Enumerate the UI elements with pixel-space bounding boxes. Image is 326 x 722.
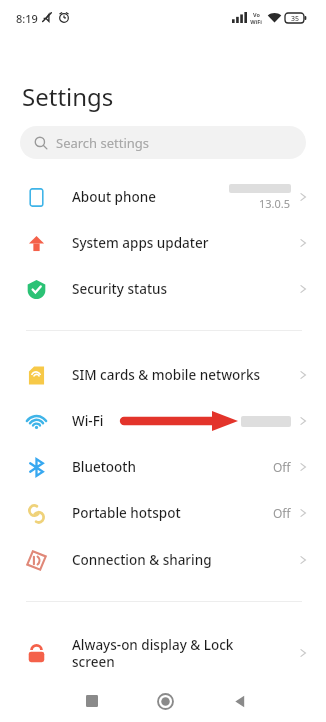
staticText: 35	[291, 14, 300, 24]
button[interactable]: Search settings	[20, 126, 306, 159]
staticText: Security status	[72, 280, 298, 298]
button[interactable]: Bluetooth	[0, 444, 326, 490]
staticText: Search settings	[56, 134, 150, 152]
staticText: Portable hotspot	[72, 504, 273, 522]
staticText: About phone	[72, 188, 229, 206]
staticText: Always-on display & Lock screen	[72, 636, 298, 671]
staticText: WiFi	[250, 18, 262, 25]
staticText: System apps updater	[72, 234, 298, 252]
button[interactable]: Wi-Fi	[0, 398, 326, 444]
staticText: Settings	[22, 80, 114, 113]
button[interactable]: Back	[228, 690, 250, 712]
staticText: Bluetooth	[72, 458, 273, 476]
staticText: SIM cards & mobile networks	[72, 366, 298, 384]
staticText: Off	[273, 459, 291, 475]
staticText: Wi-Fi	[72, 412, 241, 430]
staticText: Off	[273, 505, 291, 521]
staticText: 8:19	[16, 11, 38, 26]
button[interactable]: Home	[153, 689, 177, 713]
button[interactable]: Security status	[0, 266, 326, 312]
button[interactable]: Recents	[82, 691, 102, 711]
button[interactable]: SIM cards & mobile networks	[0, 352, 326, 398]
staticText: 13.0.5	[259, 196, 291, 211]
button[interactable]: About phone	[0, 174, 326, 220]
button[interactable]: Always-on display & Lock screen	[0, 630, 326, 676]
button[interactable]: Connection & sharing	[0, 537, 326, 583]
button[interactable]: System apps updater	[0, 220, 326, 266]
staticText: Connection & sharing	[72, 551, 298, 569]
button[interactable]: Portable hotspot	[0, 490, 326, 536]
staticText: Vo	[253, 11, 260, 18]
